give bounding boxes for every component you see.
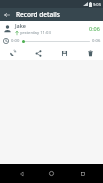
button[interactable]: Save: [51, 46, 77, 60]
button[interactable]: Back: [0, 8, 13, 21]
button[interactable]: Back: [12, 164, 31, 183]
staticText: yesterday 11:03: [20, 30, 51, 36]
button[interactable]: Play: [2, 37, 10, 45]
staticText: Record details: [16, 10, 60, 19]
button[interactable]: Home: [42, 164, 61, 183]
staticText: 0:06: [89, 25, 100, 32]
staticText: Jake: [15, 22, 26, 29]
button[interactable]: [22, 36, 90, 46]
button[interactable]: Recent apps: [73, 164, 92, 183]
button[interactable]: Call: [0, 46, 25, 60]
staticText: 0:06: [92, 38, 101, 44]
button[interactable]: Delete: [77, 46, 103, 60]
button[interactable]: Share: [25, 46, 51, 60]
staticText: 0:00: [11, 38, 20, 44]
staticText: 9:05: [93, 2, 101, 7]
button[interactable]: Jake: [0, 21, 103, 36]
